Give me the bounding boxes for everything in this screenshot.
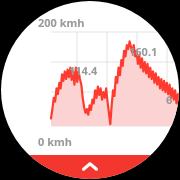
button[interactable]: Expand [0,0,180,180]
